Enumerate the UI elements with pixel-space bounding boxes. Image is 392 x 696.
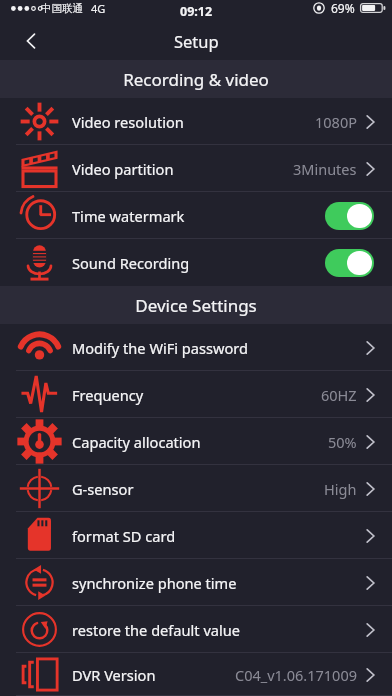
staticText: 3Minutes [293, 159, 357, 179]
staticText: synchronize phone time [72, 573, 237, 593]
button[interactable]: Video partition [0, 145, 392, 192]
staticText: Modify the WiFi password [72, 338, 249, 358]
staticText: Setup [174, 30, 219, 52]
staticText: Sound Recording [72, 253, 190, 273]
staticText: Video resolution [72, 112, 184, 132]
staticText: High [324, 479, 357, 499]
button[interactable]: Sound Recording [0, 239, 392, 286]
button[interactable]: Back [14, 24, 48, 58]
staticText: Time watermark [72, 206, 185, 226]
staticText: restore the default value [72, 620, 241, 640]
button[interactable]: DVR Version [0, 653, 392, 696]
staticText: Frequency [72, 385, 144, 405]
button[interactable]: G-sensor [0, 465, 392, 512]
staticText: C04_v1.06.171009 [235, 665, 357, 685]
staticText: G-sensor [72, 479, 134, 499]
staticText: 4G [91, 1, 106, 16]
staticText: Recording & video [123, 68, 269, 91]
staticText: 中国联通 [41, 2, 83, 15]
staticText: 60HZ [321, 385, 357, 405]
staticText: 1080P [315, 112, 357, 132]
staticText: 50% [328, 432, 357, 452]
staticText: Capacity allocation [72, 432, 201, 452]
staticText: format SD card [72, 526, 176, 546]
staticText: Video partition [72, 159, 174, 179]
button[interactable]: Toggle [325, 202, 374, 230]
button[interactable]: Modify the WiFi password [0, 324, 392, 371]
button[interactable]: format SD card [0, 512, 392, 559]
button[interactable]: Video resolution [0, 98, 392, 145]
staticText: DVR Version [72, 665, 156, 685]
staticText: 09:12 [180, 3, 213, 20]
button[interactable]: restore the default value [0, 606, 392, 653]
staticText: Device Settings [135, 294, 257, 317]
button[interactable]: Frequency [0, 371, 392, 418]
button[interactable]: synchronize phone time [0, 559, 392, 606]
button[interactable]: Time watermark [0, 192, 392, 239]
staticText: 69% [331, 0, 355, 16]
button[interactable]: Capacity allocation [0, 418, 392, 465]
button[interactable]: Toggle [325, 249, 374, 277]
